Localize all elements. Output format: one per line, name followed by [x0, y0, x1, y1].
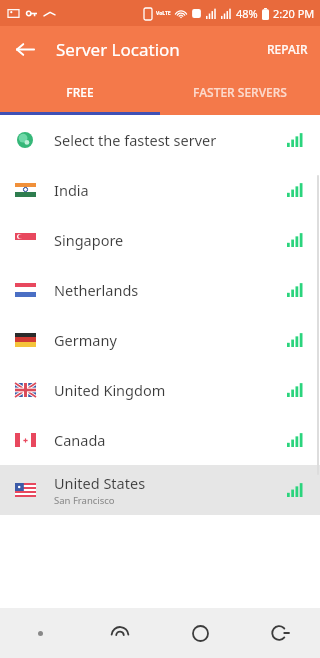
staticText: REPAIR [267, 41, 308, 57]
button[interactable]: Menu [0, 608, 80, 658]
button[interactable]: United States [0, 465, 320, 515]
button[interactable]: Select the fastest server [0, 115, 320, 165]
staticText: VoLTE [156, 10, 171, 17]
staticText: United States [54, 473, 146, 493]
staticText: Select the fastest server [54, 130, 217, 150]
button[interactable]: Germany [0, 315, 320, 365]
button[interactable]: FASTER SERVERS [160, 72, 320, 112]
staticText: Server Location [56, 38, 180, 61]
staticText: FASTER SERVERS [193, 84, 287, 100]
staticText: 2:20 PM [273, 6, 315, 21]
button[interactable]: India [0, 165, 320, 215]
staticText: Singapore [54, 230, 124, 250]
button[interactable]: FREE [0, 72, 160, 112]
button[interactable]: Netherlands [0, 265, 320, 315]
staticText: Netherlands [54, 280, 139, 300]
button[interactable]: Home [160, 608, 240, 658]
button[interactable]: Recents [80, 608, 160, 658]
button[interactable]: Back [240, 608, 320, 658]
button[interactable]: Singapore [0, 215, 320, 265]
staticText: Germany [54, 330, 117, 350]
button[interactable]: Back [8, 32, 42, 66]
button[interactable]: Canada [0, 415, 320, 465]
button[interactable]: REPAIR [255, 31, 320, 67]
staticText: India [54, 180, 89, 200]
staticText: FREE [66, 84, 94, 100]
staticText: Canada [54, 430, 106, 450]
staticText: 48% [236, 6, 258, 21]
staticText: United Kingdom [54, 380, 166, 400]
staticText: San Francisco [54, 494, 115, 507]
button[interactable]: United Kingdom [0, 365, 320, 415]
